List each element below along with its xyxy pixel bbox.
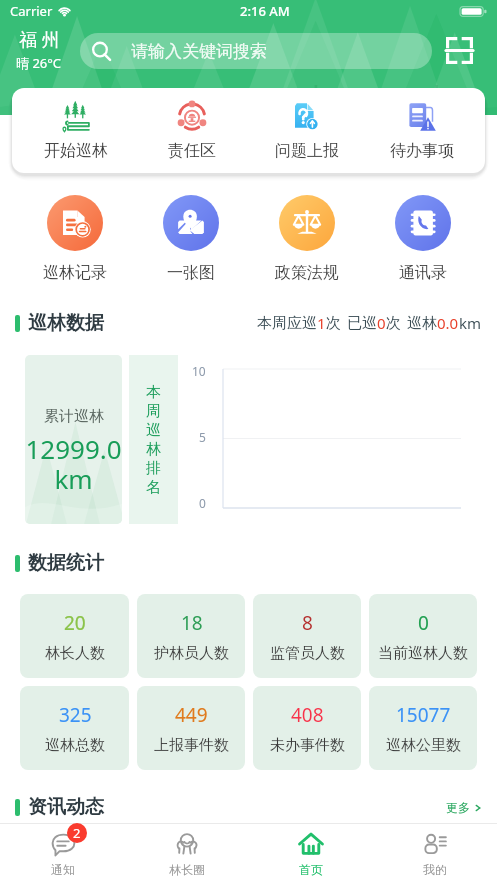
staticText: 晴 26°C	[16, 54, 62, 72]
staticText: 15077	[396, 702, 451, 728]
staticText: 更多	[446, 800, 470, 815]
staticText: 当前巡林人数	[378, 644, 468, 663]
staticText: 福 州	[19, 27, 60, 52]
button[interactable]: 巡林记录	[16, 195, 133, 283]
staticText: 首页	[299, 862, 323, 877]
staticText: 上报事件数	[154, 736, 229, 755]
button[interactable]: 首页	[249, 824, 373, 883]
staticText: 未办事件数	[270, 736, 345, 755]
staticText: 8	[302, 610, 313, 636]
staticText: 325	[59, 702, 92, 728]
button[interactable]: 408	[253, 686, 361, 770]
staticText: 本 周 巡 林 排 名	[146, 383, 161, 497]
button[interactable]: 本 周 巡 林 排 名	[129, 355, 178, 524]
staticText: 18	[181, 610, 203, 636]
staticText: 开始巡林	[44, 141, 108, 161]
staticText: 巡林总数	[45, 736, 105, 755]
staticText: 累计巡林	[44, 407, 104, 426]
staticText: 0	[199, 495, 206, 511]
staticText: km	[459, 313, 482, 333]
button[interactable]: 累计巡林	[25, 355, 122, 524]
button[interactable]: 责任区	[134, 88, 249, 173]
button[interactable]: 通讯录	[365, 195, 481, 283]
staticText: 请输入关键词搜索	[131, 41, 267, 62]
button[interactable]: 问题上报	[249, 88, 364, 173]
staticText: 我的	[423, 862, 447, 877]
button[interactable]: 20	[20, 594, 129, 678]
staticText: 资讯动态	[28, 795, 104, 819]
staticText: 林长圈	[169, 862, 205, 877]
staticText: 449	[175, 702, 208, 728]
staticText: 林长人数	[45, 644, 105, 663]
staticText: 一张图	[167, 263, 215, 283]
staticText: 巡林数据	[28, 311, 104, 335]
button[interactable]: 15077	[369, 686, 477, 770]
staticText: 0.0	[437, 313, 459, 333]
button[interactable]: 0	[369, 594, 477, 678]
staticText: 2	[73, 824, 81, 842]
staticText: Carrier	[10, 2, 53, 20]
staticText: 12999.0 km	[25, 431, 122, 496]
staticText: 0	[418, 610, 429, 636]
staticText: 10	[192, 363, 206, 379]
staticText: 责任区	[168, 141, 216, 161]
staticText: 1	[317, 313, 326, 333]
button[interactable]: 我的	[373, 824, 497, 883]
button[interactable]: 18	[137, 594, 245, 678]
staticText: 次	[326, 314, 341, 333]
button[interactable]: Scan QR code	[441, 32, 477, 68]
button[interactable]: 8	[253, 594, 361, 678]
staticText: 5	[199, 429, 206, 445]
staticText: 巡林	[407, 314, 437, 333]
staticText: 408	[291, 702, 324, 728]
staticText: 监管员人数	[270, 644, 345, 663]
staticText: 通讯录	[399, 263, 447, 283]
staticText: 数据统计	[28, 551, 104, 575]
button[interactable]: 政策法规	[249, 195, 365, 283]
staticText: 20	[64, 610, 86, 636]
staticText: 2:16 AM	[240, 2, 290, 20]
staticText: 政策法规	[275, 263, 339, 283]
staticText: 问题上报	[275, 141, 339, 161]
button[interactable]: 更多	[446, 800, 482, 815]
staticText: 已巡	[347, 314, 377, 333]
staticText: 巡林公里数	[386, 736, 461, 755]
button[interactable]: 请输入关键词搜索	[80, 33, 432, 69]
button[interactable]: 2	[0, 824, 125, 883]
button[interactable]: 开始巡林	[18, 88, 134, 173]
button[interactable]: 林长圈	[125, 824, 249, 883]
button[interactable]: 325	[20, 686, 129, 770]
staticText: 护林员人数	[154, 644, 229, 663]
button[interactable]: 449	[137, 686, 245, 770]
staticText: 本周应巡	[257, 314, 317, 333]
staticText: 次	[386, 314, 401, 333]
staticText: 待办事项	[390, 141, 454, 161]
button[interactable]: 待办事项	[364, 88, 479, 173]
staticText: 0	[377, 313, 386, 333]
staticText: 巡林记录	[43, 263, 107, 283]
staticText: 通知	[51, 862, 75, 877]
button[interactable]: 一张图	[133, 195, 249, 283]
